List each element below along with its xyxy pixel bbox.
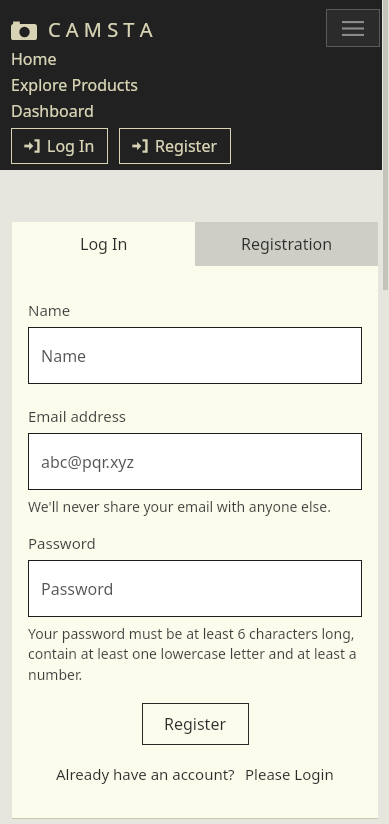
staticText: Your password must be at least 6 charact…: [28, 624, 362, 685]
staticText: Email address: [28, 406, 127, 426]
staticText: Log In: [47, 135, 95, 157]
button[interactable]: Password: [28, 560, 362, 617]
button[interactable]: Log In: [11, 128, 108, 164]
staticText: Dashboard: [11, 100, 94, 122]
staticText: abc@pqr.xyz: [41, 451, 135, 473]
button[interactable]: Please Login: [245, 764, 334, 784]
button[interactable]: C A M S T A: [11, 16, 153, 43]
button[interactable]: Toggle navigation menu: [326, 9, 380, 47]
button[interactable]: Home: [11, 46, 57, 72]
button[interactable]: abc@pqr.xyz: [28, 433, 362, 490]
staticText: Password: [28, 533, 96, 553]
staticText: Registration: [241, 233, 333, 255]
staticText: Explore Products: [11, 74, 138, 96]
button[interactable]: Name: [28, 327, 362, 384]
staticText: Register: [164, 713, 227, 735]
staticText: C A M S T A: [48, 16, 153, 43]
button[interactable]: Dashboard: [11, 98, 94, 124]
staticText: Please Login: [245, 764, 334, 784]
staticText: Name: [28, 300, 71, 320]
staticText: Log In: [80, 233, 128, 255]
button[interactable]: Registration: [195, 222, 378, 266]
button[interactable]: Register: [142, 703, 249, 745]
staticText: Password: [41, 578, 114, 600]
staticText: Register: [155, 135, 218, 157]
staticText: Already have an account?: [56, 764, 235, 784]
button[interactable]: Register: [119, 128, 231, 164]
staticText: Home: [11, 48, 57, 70]
staticText: We'll never share your email with anyone…: [28, 497, 331, 516]
button[interactable]: Log In: [12, 222, 195, 266]
button[interactable]: Explore Products: [11, 72, 138, 98]
staticText: Name: [41, 345, 87, 367]
